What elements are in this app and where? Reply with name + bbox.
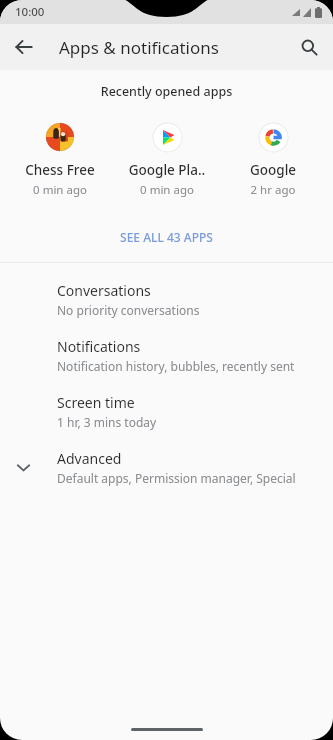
staticText: Advanced: [57, 449, 122, 468]
staticText: Google: [223, 161, 323, 179]
staticText: 10:00: [15, 4, 45, 20]
button[interactable]: Search: [291, 29, 327, 65]
button[interactable]: Chess Free: [10, 120, 110, 200]
button[interactable]: Advanced: [0, 439, 333, 495]
staticText: SEE ALL 43 APPS: [120, 229, 213, 245]
staticText: Screen time: [57, 393, 135, 412]
staticText: Recently opened apps: [0, 83, 333, 100]
staticText: Chess Free: [10, 161, 110, 179]
button[interactable]: Google: [223, 120, 323, 200]
staticText: 1 hr, 3 mins today: [57, 414, 157, 430]
button[interactable]: Notifications: [0, 327, 333, 383]
staticText: Notification history, bubbles, recently …: [57, 358, 295, 374]
staticText: Default apps, Permission manager, Specia…: [57, 470, 319, 486]
staticText: Google Pla..: [117, 161, 217, 179]
staticText: Apps & notifications: [59, 36, 219, 59]
button[interactable]: SEE ALL 43 APPS: [0, 220, 333, 254]
staticText: Conversations: [57, 281, 151, 300]
staticText: Notifications: [57, 337, 141, 356]
staticText: No priority conversations: [57, 302, 200, 318]
staticText: 2 hr ago: [223, 182, 323, 198]
button[interactable]: Google Pla..: [117, 120, 217, 200]
button[interactable]: Back: [6, 29, 42, 65]
staticText: 0 min ago: [10, 182, 110, 198]
button[interactable]: Conversations: [0, 271, 333, 327]
staticText: 0 min ago: [117, 182, 217, 198]
button[interactable]: Screen time: [0, 383, 333, 439]
